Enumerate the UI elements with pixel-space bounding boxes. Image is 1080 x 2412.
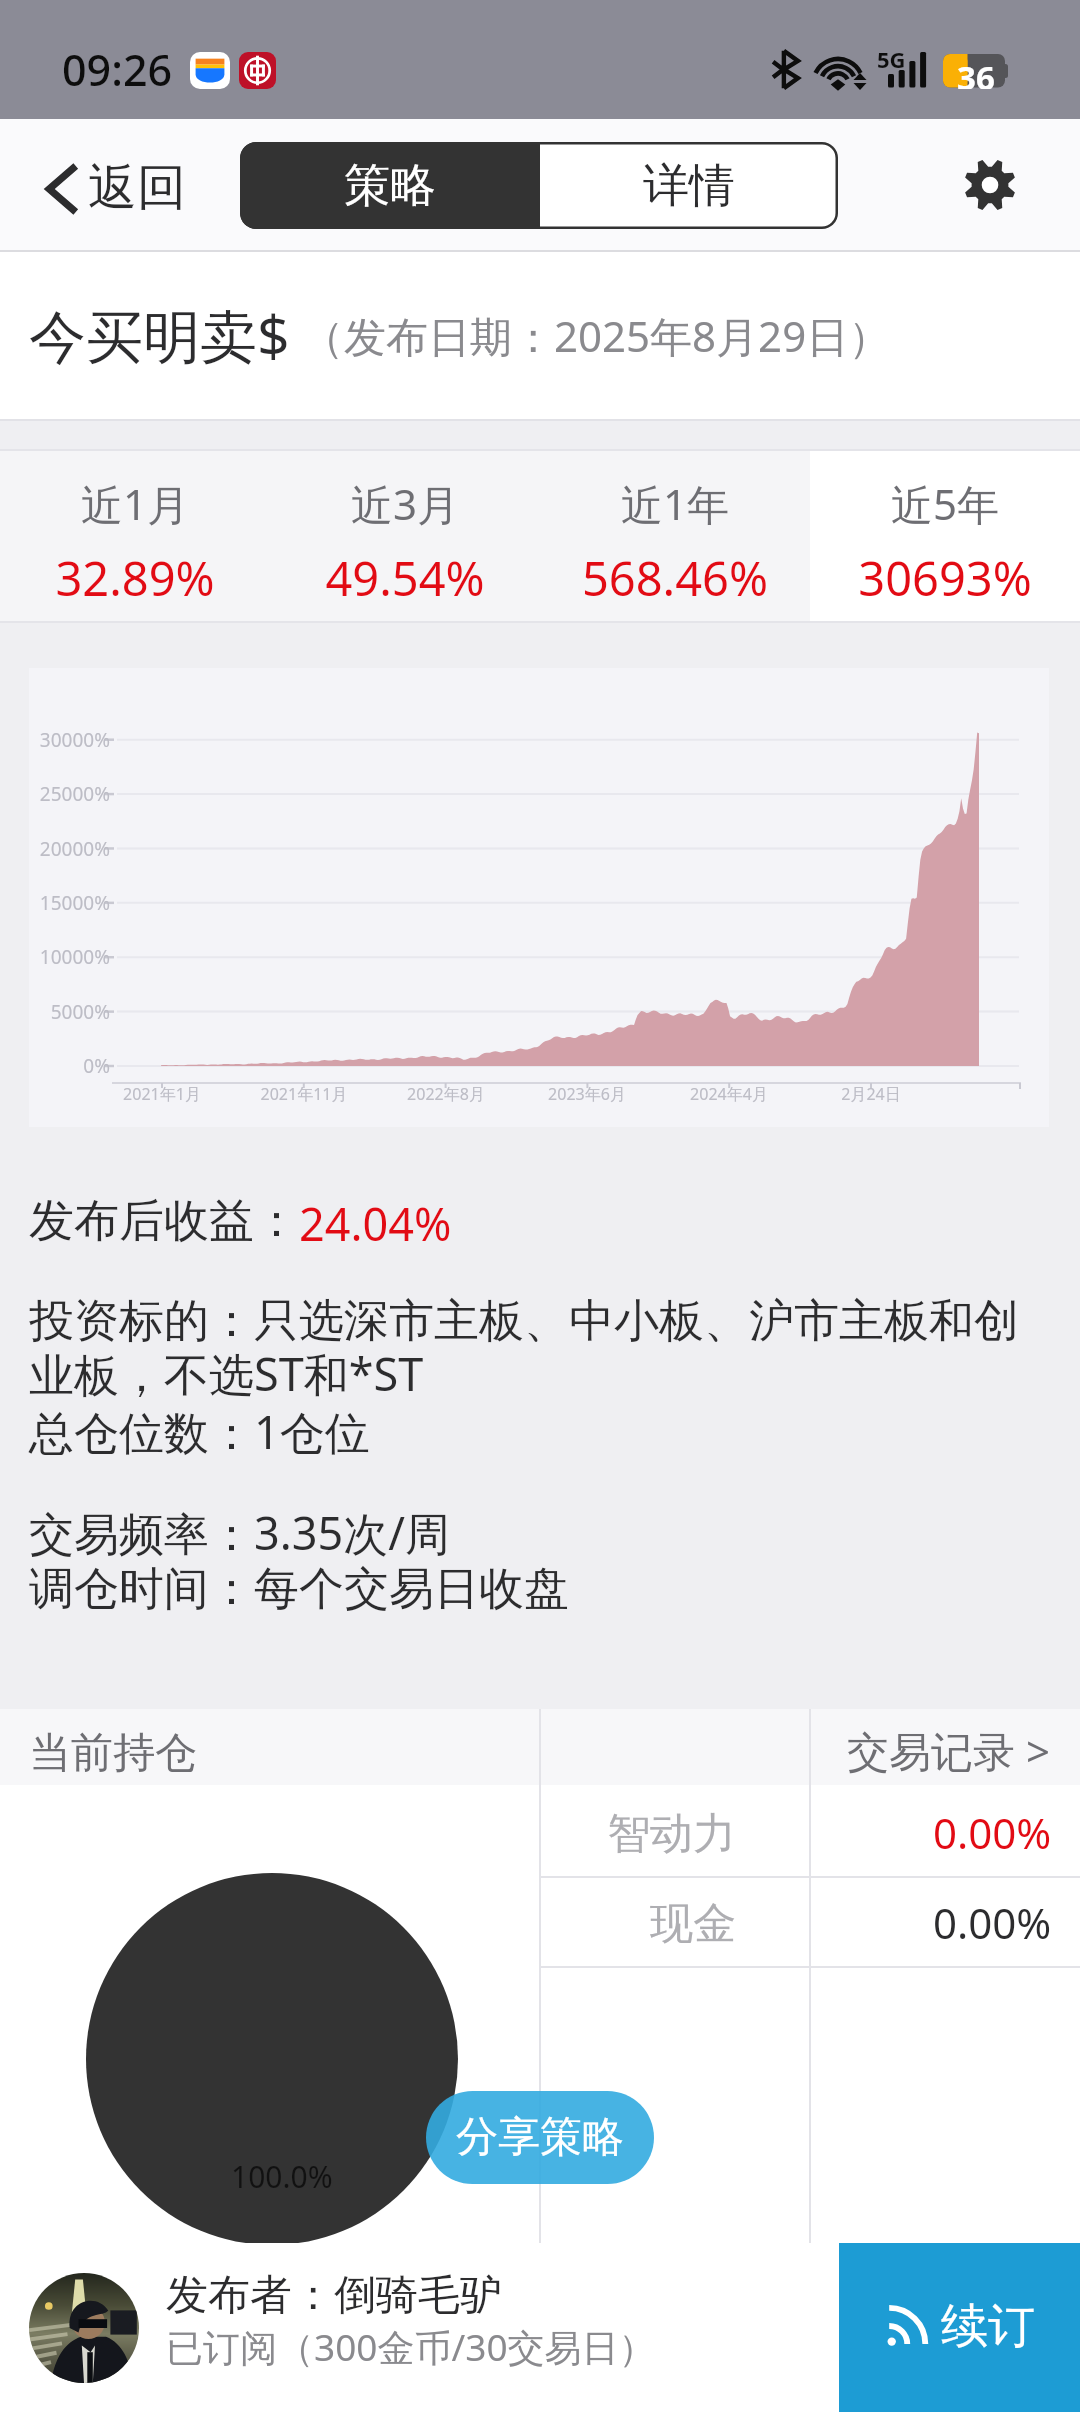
button[interactable] xyxy=(240,142,540,229)
staticText: 返回 xyxy=(88,157,186,219)
staticText: 10000% xyxy=(29,944,110,970)
button[interactable]: 交易记录 > xyxy=(810,1709,1080,1785)
button[interactable]: 详情 xyxy=(540,142,838,229)
button[interactable]: 近5年 xyxy=(810,451,1080,623)
button[interactable]: 近1月 xyxy=(0,451,270,623)
staticText: 36 xyxy=(957,55,995,89)
button[interactable]: 近3月 xyxy=(270,451,540,623)
staticText: 2022年8月 xyxy=(366,1083,526,1105)
staticText: 交易频率：3.35次/周 xyxy=(29,1502,451,1563)
button[interactable]: Settings xyxy=(952,147,1028,223)
staticText: 调仓时间：每个交易日收盘 xyxy=(29,1561,569,1618)
staticText: （发布日期：2025年8月29日） xyxy=(302,307,891,364)
staticText: 总仓位数：1仓位 xyxy=(29,1401,370,1462)
staticText: 今买明卖$ xyxy=(29,296,290,374)
staticText: 24.04% xyxy=(299,1193,452,1254)
staticText: 0% xyxy=(29,1053,110,1079)
button[interactable]: 续订 xyxy=(839,2243,1080,2412)
staticText: 2月24日 xyxy=(791,1083,951,1105)
staticText: 09:26 xyxy=(62,40,173,99)
staticText: 近3月 xyxy=(270,475,540,532)
button[interactable]: 返回 xyxy=(46,123,186,255)
staticText: 业板，不选ST和*ST xyxy=(29,1343,424,1404)
button[interactable]: 发布者：倒骑毛驴 xyxy=(0,2243,839,2412)
staticText: 5G xyxy=(877,44,906,74)
staticText: 2024年4月 xyxy=(649,1083,809,1105)
staticText: 投资标的：只选深市主板、中小板、沪市主板和创 xyxy=(29,1293,1019,1350)
staticText: 发布者：倒骑毛驴 xyxy=(166,2269,502,2322)
staticText: 20000% xyxy=(29,836,110,862)
staticText: 32.89% xyxy=(0,546,270,610)
staticText: 智动力 xyxy=(607,1807,736,1861)
staticText: 现金 xyxy=(650,1897,736,1951)
staticText: 2021年11月 xyxy=(224,1083,384,1105)
button[interactable]: 近1年 xyxy=(540,451,810,623)
staticText: 5000% xyxy=(29,999,110,1025)
staticText: 0.00% xyxy=(933,1804,1052,1861)
staticText: 100.0% xyxy=(231,2156,333,2197)
staticText: 30000% xyxy=(29,727,110,753)
staticText: 2021年1月 xyxy=(82,1083,242,1105)
staticText: 当前持仓 xyxy=(29,1727,197,1780)
staticText: 策略 xyxy=(344,157,436,215)
staticText: 49.54% xyxy=(270,546,540,610)
staticText: 分享策略 xyxy=(456,2111,624,2164)
staticText: 交易记录 > xyxy=(847,1722,1050,1779)
staticText: 0.00% xyxy=(933,1894,1052,1951)
staticText: 2023年6月 xyxy=(507,1083,667,1105)
staticText: 已订阅（300金币/30交易日） xyxy=(166,2321,656,2372)
staticText: 详情 xyxy=(643,157,735,215)
staticText: 续订 xyxy=(941,2297,1035,2356)
staticText: 近1月 xyxy=(0,475,270,532)
button[interactable]: 分享策略 xyxy=(426,2091,654,2184)
staticText: 发布后收益： xyxy=(29,1193,299,1250)
staticText: 25000% xyxy=(29,781,110,807)
staticText: 近1年 xyxy=(540,475,810,532)
staticText: 30693% xyxy=(810,546,1080,610)
staticText: 近5年 xyxy=(810,475,1080,532)
staticText: 568.46% xyxy=(540,546,810,610)
staticText: 15000% xyxy=(29,890,110,916)
